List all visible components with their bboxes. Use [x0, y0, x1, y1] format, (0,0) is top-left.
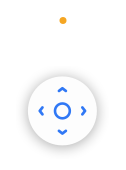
button[interactable]: Down [51, 121, 73, 143]
button[interactable]: Status [52, 9, 74, 31]
button[interactable]: Up [51, 79, 73, 101]
button[interactable]: Right [73, 100, 95, 122]
button[interactable]: Left [30, 100, 52, 122]
button[interactable]: Select [49, 98, 75, 124]
